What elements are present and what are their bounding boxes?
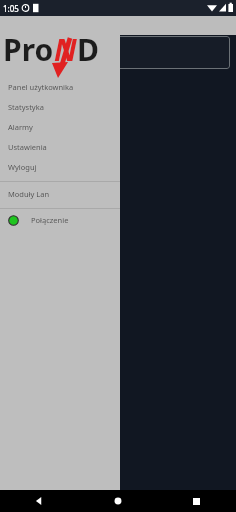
button[interactable]: Wyloguj xyxy=(0,157,120,177)
staticText: Alarmy xyxy=(8,122,33,132)
staticText: Moduły Lan xyxy=(8,189,50,199)
button[interactable]: Alarmy xyxy=(0,117,120,137)
button[interactable]: Panel użytkownika xyxy=(0,77,120,97)
button[interactable]: Back xyxy=(0,490,78,512)
button[interactable]: Połączenie xyxy=(0,209,120,231)
staticText: N xyxy=(54,29,77,70)
staticText: Wyloguj xyxy=(8,162,37,172)
button[interactable]: Statystyka xyxy=(0,97,120,117)
staticText: Panel użytkownika xyxy=(8,82,74,92)
staticText: Ustawienia xyxy=(8,142,47,152)
staticText: Statystyka xyxy=(8,102,44,112)
button[interactable]: Recent apps xyxy=(157,490,236,512)
staticText: Pro xyxy=(3,29,54,70)
button[interactable]: Home xyxy=(78,490,157,512)
button[interactable]: Moduły Lan xyxy=(0,184,120,204)
staticText: Połączenie xyxy=(31,215,69,225)
staticText: 1:05 xyxy=(3,3,19,14)
button[interactable]: Ustawienia xyxy=(0,137,120,157)
button[interactable] xyxy=(6,36,230,69)
staticText: D xyxy=(77,29,99,70)
